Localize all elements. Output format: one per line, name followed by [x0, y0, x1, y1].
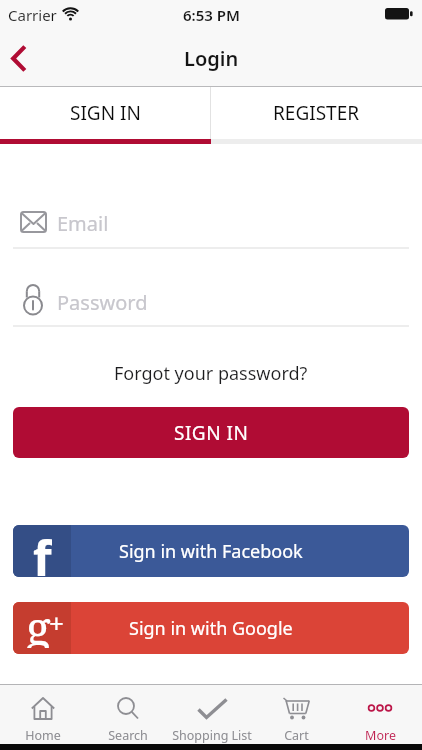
staticText: g: [26, 602, 51, 648]
staticText: REGISTER: [273, 100, 360, 126]
staticText: Email: [57, 210, 109, 237]
button[interactable]: [0, 40, 38, 76]
staticText: More: [365, 727, 396, 744]
button[interactable]: SIGN IN: [13, 407, 409, 458]
button[interactable]: [10, 278, 412, 326]
button[interactable]: Search: [85, 685, 170, 744]
staticText: +: [49, 605, 64, 640]
staticText: f: [33, 525, 52, 577]
staticText: Sign in with Facebook: [119, 539, 303, 564]
staticText: SIGN IN: [70, 100, 141, 126]
staticText: Search: [108, 727, 148, 744]
button[interactable]: SIGN IN: [0, 87, 211, 139]
button[interactable]: Shopping List: [170, 685, 254, 744]
staticText: SIGN IN: [174, 420, 249, 446]
staticText: Home: [25, 727, 61, 744]
button[interactable]: g: [13, 602, 409, 654]
button[interactable]: REGISTER: [211, 87, 422, 139]
staticText: Sign in with Google: [129, 616, 293, 641]
staticText: Forgot your password?: [114, 361, 308, 386]
staticText: Password: [57, 289, 148, 316]
button[interactable]: Forgot your password?: [110, 358, 312, 388]
staticText: Carrier: [8, 5, 57, 25]
button[interactable]: Cart: [254, 685, 338, 744]
button[interactable]: f: [13, 525, 409, 577]
staticText: Shopping List: [172, 727, 252, 744]
staticText: Cart: [284, 727, 309, 744]
button[interactable]: [10, 200, 412, 248]
staticText: Login: [184, 45, 239, 72]
button[interactable]: Home: [0, 685, 85, 744]
staticText: 6:53 PM: [183, 5, 240, 25]
button[interactable]: More: [338, 685, 422, 744]
